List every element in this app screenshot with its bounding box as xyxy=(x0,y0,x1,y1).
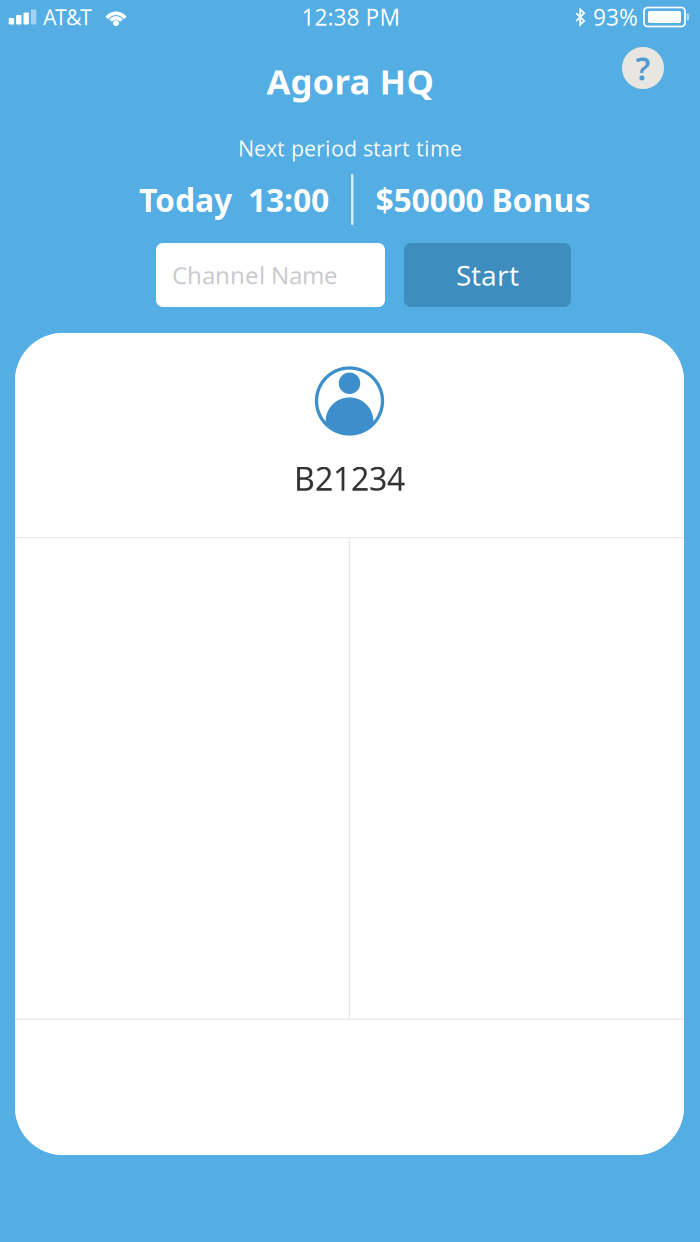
staticText: Agora HQ xyxy=(266,58,433,104)
staticText: B21234 xyxy=(294,457,405,499)
staticText: 12:38 PM xyxy=(301,2,400,32)
staticText: $50000 Bonus xyxy=(375,178,590,221)
staticText: 93% xyxy=(593,2,638,32)
staticText: ? xyxy=(635,47,650,89)
staticText: Start xyxy=(456,256,519,294)
staticText: Today 13:00 xyxy=(139,178,329,221)
staticText: Next period start time xyxy=(238,134,462,162)
button[interactable]: Start xyxy=(404,243,571,307)
button[interactable]: B21234 xyxy=(15,333,684,537)
staticText: Channel Name xyxy=(172,259,338,291)
button[interactable]: Channel Name xyxy=(156,243,385,307)
staticText: AT&T xyxy=(43,3,92,31)
button[interactable]: Help xyxy=(622,47,664,89)
